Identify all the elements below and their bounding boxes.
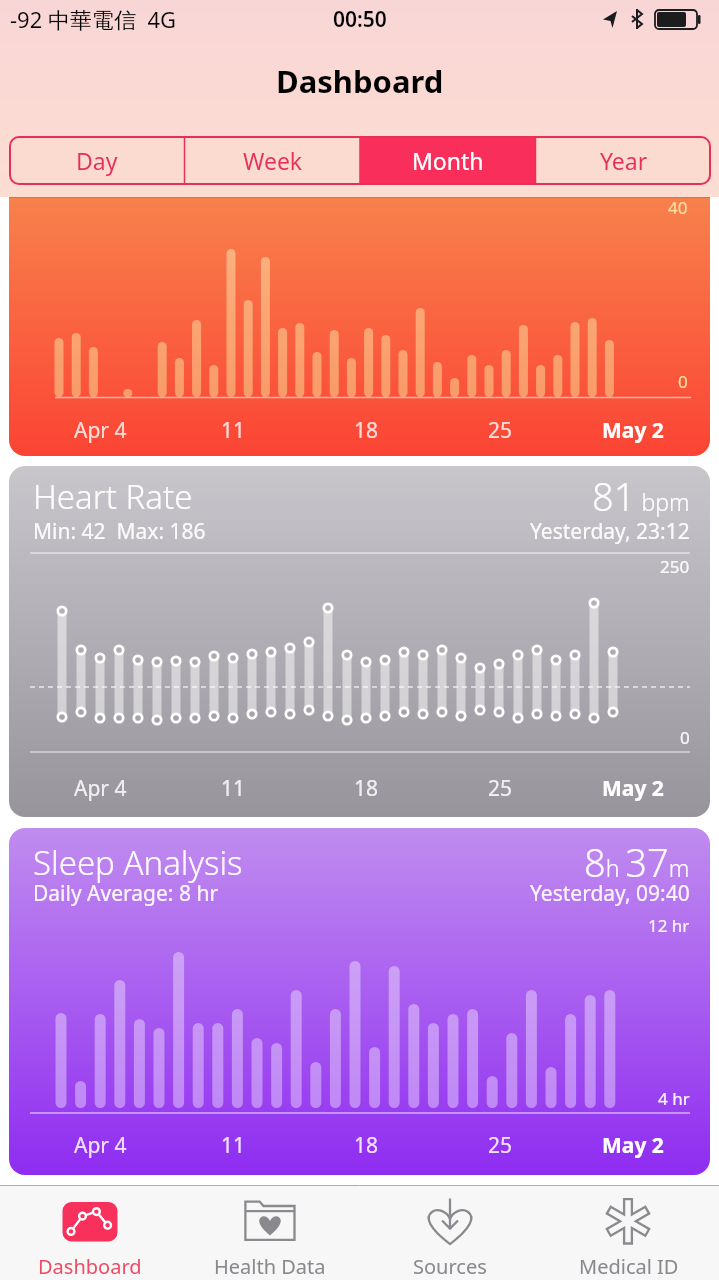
staticText: Yesterday, 09:40 <box>530 879 690 908</box>
staticText: 12 hr <box>648 914 690 937</box>
staticText: Sources <box>413 1253 487 1279</box>
staticText: Day <box>76 145 118 176</box>
staticText: 11 <box>221 416 246 445</box>
staticText: May 2 <box>602 416 664 445</box>
staticText: 81 bpm <box>592 470 690 522</box>
staticText: Week <box>243 145 303 176</box>
staticText: 18 <box>354 416 379 445</box>
staticText: 8h 37m <box>584 836 690 888</box>
staticText: Dashboard <box>38 1253 142 1279</box>
staticText: Daily Average: 8 hr <box>33 879 219 908</box>
staticText: Apr 4 <box>74 774 127 803</box>
staticText: 0 <box>678 370 688 393</box>
staticText: Heart Rate <box>33 474 193 519</box>
button[interactable]: Sources <box>360 1185 540 1280</box>
staticText: 0 <box>680 726 690 749</box>
staticText: Sleep Analysis <box>33 840 243 885</box>
staticText: Medical ID <box>579 1253 679 1279</box>
button[interactable]: Year <box>536 136 712 185</box>
staticText: Apr 4 <box>74 416 127 445</box>
staticText: Health Data <box>214 1253 326 1279</box>
staticText: 25 <box>488 774 513 803</box>
staticText: Apr 4 <box>74 1131 127 1160</box>
staticText: Min: 42 Max: 186 <box>33 517 206 546</box>
button[interactable]: Medical ID <box>539 1185 719 1280</box>
staticText: 11 <box>221 774 246 803</box>
staticText: 25 <box>488 416 513 445</box>
button[interactable]: Health Data <box>180 1185 360 1280</box>
staticText: -92 中華電信 4G <box>10 4 177 34</box>
staticText: 4 hr <box>658 1087 690 1110</box>
button[interactable]: Dashboard <box>0 1185 180 1280</box>
staticText: Year <box>600 145 648 176</box>
staticText: Month <box>412 145 484 176</box>
button[interactable]: Heart Rate <box>9 466 710 817</box>
button[interactable]: Month <box>360 136 536 185</box>
staticText: May 2 <box>602 774 664 803</box>
staticText: 00:50 <box>333 5 387 34</box>
button[interactable]: 40 <box>9 197 710 456</box>
staticText: 11 <box>221 1131 246 1160</box>
staticText: Dashboard <box>276 60 444 102</box>
staticText: 25 <box>488 1131 513 1160</box>
staticText: Yesterday, 23:12 <box>530 517 690 546</box>
button[interactable]: Week <box>185 136 361 185</box>
staticText: 18 <box>354 774 379 803</box>
staticText: 40 <box>668 197 688 219</box>
button[interactable]: Day <box>9 136 185 185</box>
staticText: 18 <box>354 1131 379 1160</box>
staticText: 250 <box>660 555 690 578</box>
staticText: May 2 <box>602 1131 664 1160</box>
button[interactable]: Sleep Analysis <box>9 828 710 1175</box>
